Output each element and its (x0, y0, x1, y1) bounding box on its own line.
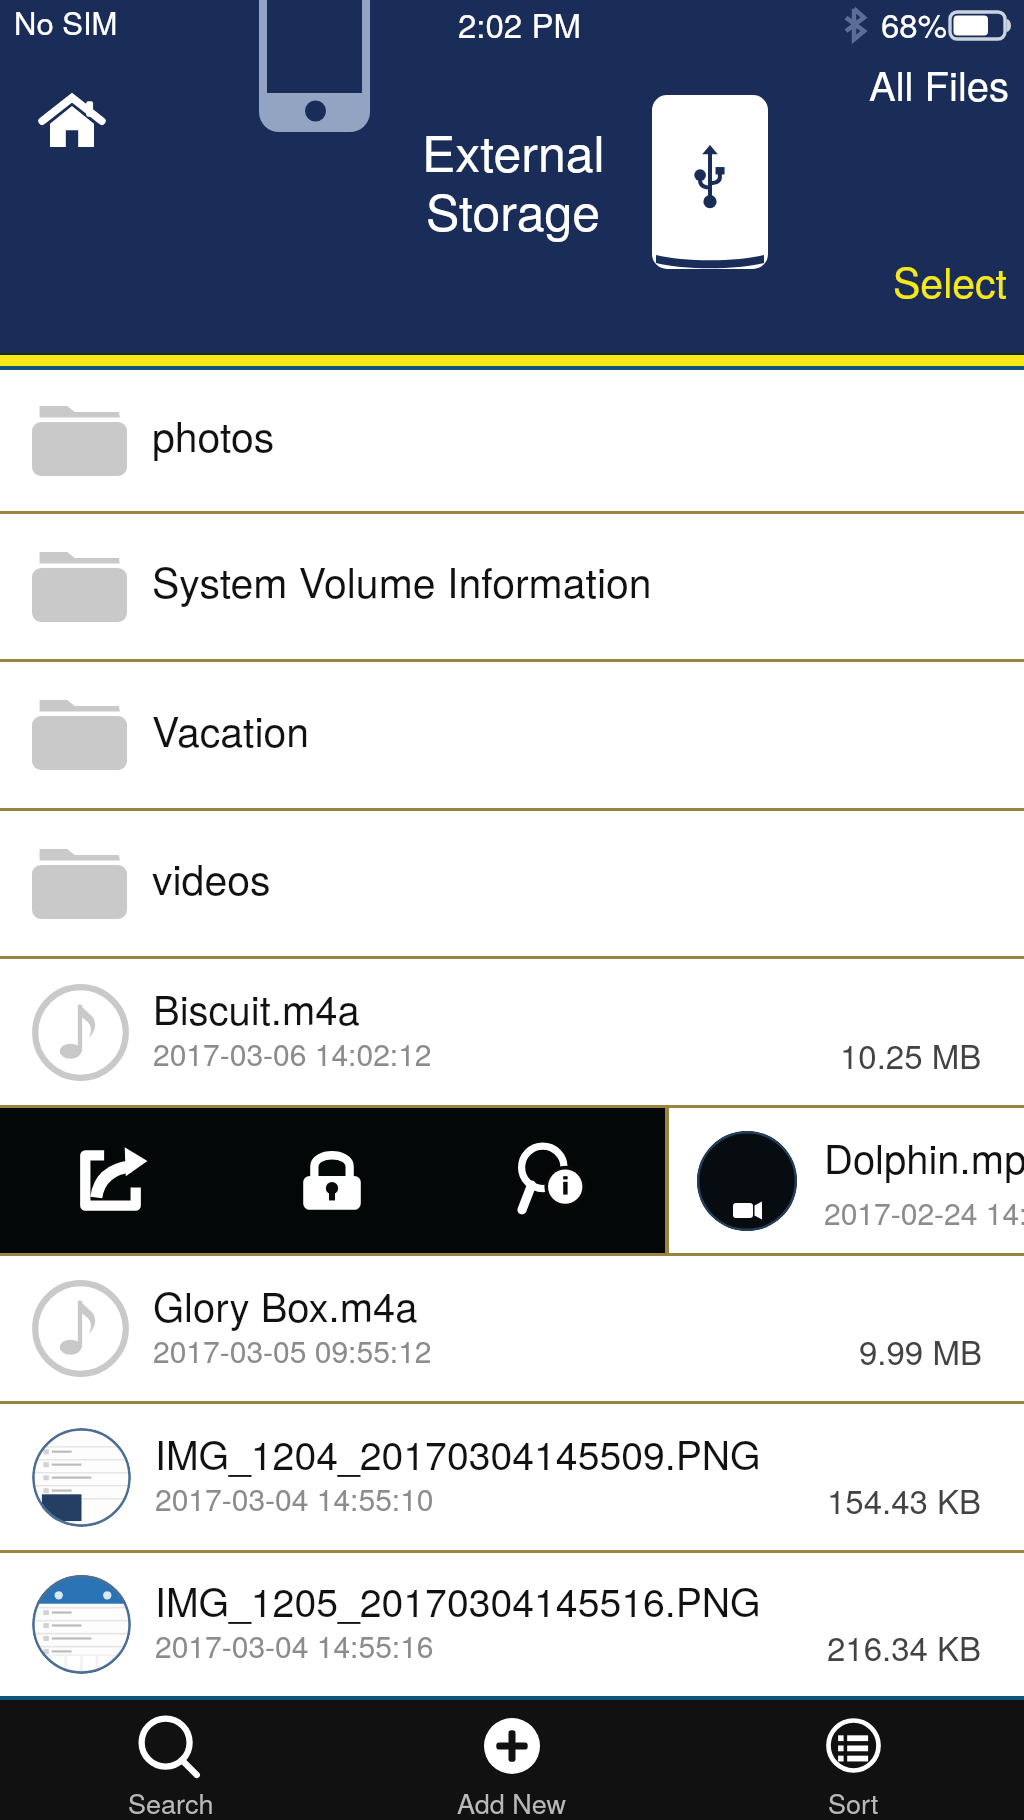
button[interactable]: USB Drive (652, 95, 768, 269)
staticText: 9.99 MB (859, 1327, 982, 1374)
staticText: 154.43 KB (827, 1476, 982, 1523)
staticText: Biscuit.m4a (153, 979, 360, 1036)
staticText: External (422, 115, 605, 187)
button[interactable]: IMG_1205_20170304145516.PNG (0, 1553, 1024, 1696)
staticText: IMG_1204_20170304145509.PNG (155, 1425, 761, 1481)
staticText: 2017-03-04 14:55:16 (155, 1624, 434, 1667)
staticText: 68% (881, 0, 948, 47)
button[interactable]: photos (0, 370, 1024, 511)
button[interactable]: Glory Box.m4a (0, 1256, 1024, 1401)
staticText: photos (152, 405, 275, 464)
staticText: Storage (426, 174, 601, 246)
button[interactable]: Select (856, 242, 1020, 318)
button[interactable]: Lock (221, 1108, 443, 1253)
button[interactable]: System Volume Information (0, 514, 1024, 659)
button[interactable]: Share (0, 1108, 221, 1253)
staticText: 216.34 KB (827, 1623, 982, 1670)
button[interactable]: Sort (683, 1700, 1024, 1820)
button[interactable]: Vacation (0, 662, 1024, 808)
button[interactable]: All Files (840, 44, 1020, 120)
staticText: Add New (457, 1783, 566, 1820)
button[interactable]: IMG_1204_20170304145509.PNG (0, 1404, 1024, 1550)
button[interactable]: Details (443, 1108, 665, 1253)
staticText: Sort (828, 1783, 879, 1820)
staticText: 2017-02-24 14:33:55 (824, 1191, 1024, 1234)
staticText: 10.25 MB (840, 1031, 982, 1078)
staticText: All Files (869, 55, 1009, 112)
staticText: 2017-03-05 09:55:12 (153, 1329, 432, 1372)
button[interactable]: Search (0, 1700, 341, 1820)
staticText: videos (152, 848, 271, 907)
staticText: 2017-03-04 14:55:10 (155, 1477, 434, 1520)
button[interactable]: Add New (341, 1700, 682, 1820)
staticText: Glory Box.m4a (153, 1276, 418, 1333)
staticText: Vacation (152, 700, 310, 759)
staticText: Select (893, 251, 1007, 310)
button[interactable]: Biscuit.m4a (0, 959, 1024, 1105)
staticText: 2:02 PM (458, 0, 581, 47)
button[interactable]: Home (24, 78, 120, 164)
staticText: Dolphin.mp4 (824, 1128, 1024, 1185)
staticText: No SIM (14, 0, 118, 43)
staticText: Search (128, 1783, 214, 1820)
button[interactable]: videos (0, 811, 1024, 956)
staticText: 2017-03-06 14:02:12 (153, 1032, 432, 1075)
staticText: IMG_1205_20170304145516.PNG (155, 1572, 761, 1628)
staticText: System Volume Information (152, 551, 652, 610)
